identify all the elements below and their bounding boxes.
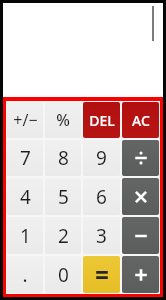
- staticText: .: [22, 262, 28, 288]
- button[interactable]: 4: [7, 178, 43, 215]
- button[interactable]: 1: [7, 217, 43, 254]
- staticText: 0: [58, 262, 69, 288]
- button[interactable]: 2: [45, 217, 81, 254]
- button[interactable]: %: [45, 102, 81, 138]
- button[interactable]: Subtract: [122, 217, 159, 254]
- button[interactable]: Divide: [122, 140, 159, 176]
- staticText: 8: [58, 145, 69, 171]
- button[interactable]: 6: [83, 178, 120, 215]
- staticText: 6: [96, 184, 107, 210]
- staticText: 4: [20, 184, 31, 210]
- button[interactable]: DEL: [83, 102, 120, 138]
- button[interactable]: 0: [45, 256, 81, 293]
- staticText: 9: [96, 145, 107, 171]
- staticText: AC: [132, 111, 150, 130]
- button[interactable]: Multiply: [122, 178, 159, 215]
- button[interactable]: 9: [83, 140, 120, 176]
- staticText: DEL: [89, 111, 115, 130]
- staticText: 3: [96, 223, 107, 249]
- staticText: %: [56, 109, 70, 131]
- staticText: 2: [58, 223, 69, 249]
- staticText: 7: [20, 145, 31, 171]
- button[interactable]: Equals: [83, 256, 120, 293]
- button[interactable]: .: [7, 256, 43, 293]
- button[interactable]: Add: [122, 256, 159, 293]
- button[interactable]: 8: [45, 140, 81, 176]
- button[interactable]: AC: [122, 102, 159, 138]
- staticText: 1: [20, 223, 31, 249]
- button[interactable]: 7: [7, 140, 43, 176]
- button[interactable]: [3, 3, 163, 97]
- button[interactable]: +/−: [7, 102, 43, 138]
- button[interactable]: 3: [83, 217, 120, 254]
- staticText: +/−: [13, 109, 38, 131]
- button[interactable]: 5: [45, 178, 81, 215]
- staticText: 5: [58, 184, 69, 210]
